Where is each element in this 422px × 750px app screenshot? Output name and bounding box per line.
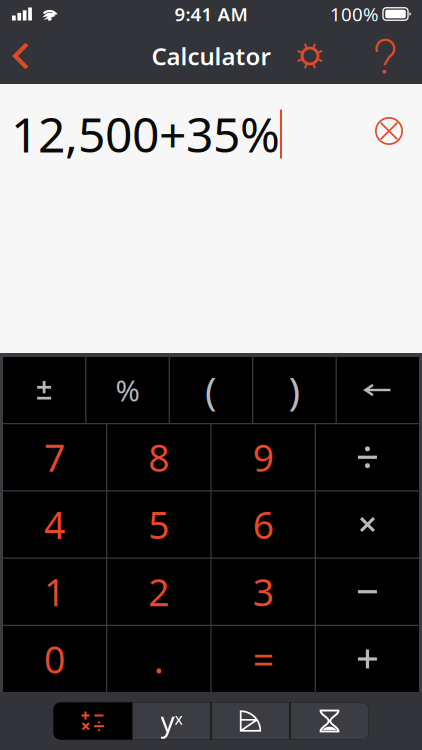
button[interactable]: Multiply — [316, 491, 419, 557]
button[interactable]: Arithmetic — [53, 702, 131, 739]
staticText: 5 — [148, 500, 169, 549]
button[interactable]: = — [212, 626, 315, 692]
button[interactable]: 3 — [212, 559, 315, 625]
button[interactable]: Back — [0, 28, 42, 84]
button[interactable]: Minus — [316, 559, 419, 625]
staticText: yx — [160, 702, 182, 740]
staticText: 6 — [253, 500, 274, 549]
staticText: 8 — [148, 432, 169, 482]
button[interactable]: 1 — [3, 559, 106, 625]
button[interactable]: History — [290, 702, 368, 739]
button[interactable]: 8 — [107, 424, 210, 490]
button[interactable]: Help — [361, 28, 409, 84]
staticText: 7 — [44, 432, 65, 482]
staticText: = — [253, 634, 274, 684]
button[interactable]: Plus — [316, 626, 419, 692]
button[interactable]: . — [107, 626, 210, 692]
button[interactable]: Plus minus — [3, 357, 85, 423]
button[interactable]: ( — [170, 357, 252, 423]
button[interactable]: Power — [132, 702, 210, 739]
staticText: Calculator — [151, 40, 270, 72]
button[interactable]: 9 — [212, 424, 315, 490]
staticText: 100% — [330, 2, 379, 26]
button[interactable]: 0 — [3, 626, 106, 692]
staticText: 1 — [44, 567, 65, 617]
staticText: ) — [288, 364, 300, 416]
staticText: 4 — [44, 500, 65, 549]
staticText: 9 — [253, 432, 274, 482]
button[interactable]: 2 — [107, 559, 210, 625]
button[interactable]: ) — [253, 357, 335, 423]
staticText: 0 — [44, 634, 65, 684]
staticText: % — [116, 370, 140, 409]
staticText: ( — [205, 364, 217, 416]
staticText: . — [154, 634, 164, 684]
button[interactable]: 5 — [107, 491, 210, 557]
button[interactable]: 4 — [3, 491, 106, 557]
button[interactable]: Backspace — [337, 357, 419, 423]
button[interactable]: % — [86, 357, 169, 423]
staticText: 12,500+35% — [11, 102, 280, 166]
button[interactable]: Theme — [259, 28, 361, 84]
button[interactable]: Clear — [365, 106, 413, 156]
button[interactable]: 7 — [3, 424, 106, 490]
button[interactable]: 6 — [212, 491, 315, 557]
staticText: 2 — [148, 567, 169, 617]
staticText: 9:41 AM — [174, 2, 247, 26]
button[interactable]: Divide — [316, 424, 419, 490]
staticText: 3 — [253, 567, 274, 617]
button[interactable]: Trigonometry — [211, 702, 289, 739]
